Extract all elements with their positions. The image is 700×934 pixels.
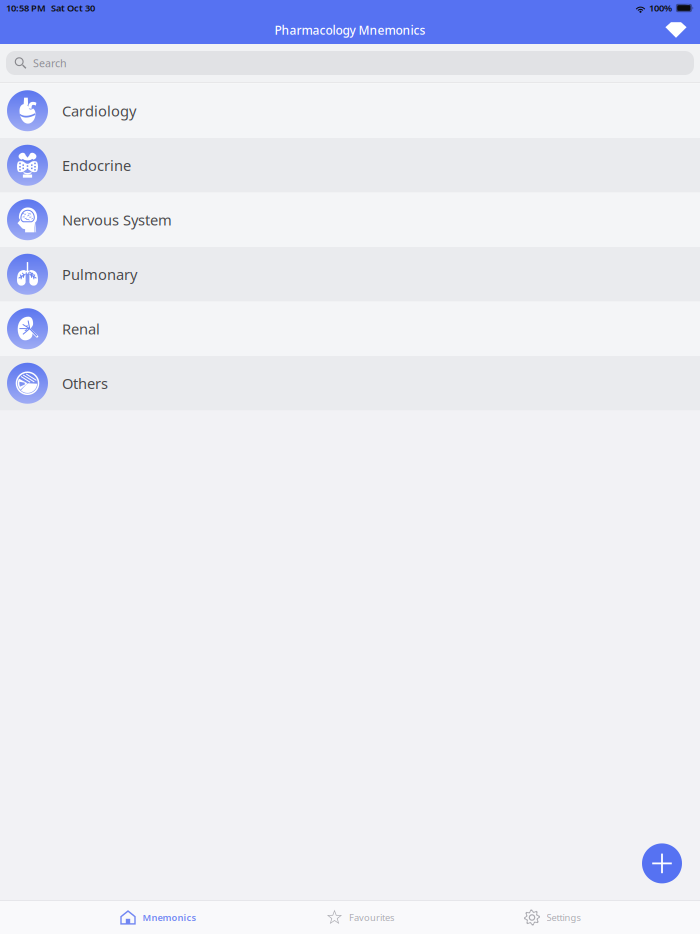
button[interactable]: Mnemonics [109, 903, 206, 932]
staticText: Settings [546, 911, 580, 924]
staticText: Endocrine [62, 155, 131, 175]
button[interactable]: Endocrine [0, 138, 700, 192]
button[interactable]: Nervous System [0, 192, 700, 247]
staticText: Favourites [349, 911, 394, 924]
button[interactable]: Cardiology [0, 83, 700, 138]
staticText: Renal [62, 319, 100, 338]
button[interactable]: Others [0, 356, 700, 410]
staticText: Others [62, 373, 108, 393]
button[interactable]: Settings [513, 903, 590, 932]
staticText: 100% [649, 2, 672, 14]
button[interactable]: Add mnemonic [642, 843, 682, 883]
staticText: Sat Oct 30 [51, 2, 95, 14]
staticText: Pulmonary [62, 264, 137, 284]
button[interactable]: Renal [0, 301, 700, 356]
button[interactable]: Favourites [316, 903, 404, 932]
staticText: Nervous System [62, 210, 172, 229]
staticText: 10:58 PM [6, 2, 46, 14]
staticText: Cardiology [62, 101, 136, 120]
button[interactable]: Pulmonary [0, 247, 700, 301]
staticText: Mnemonics [142, 911, 196, 924]
button[interactable]: Search [6, 51, 694, 75]
staticText: Pharmacology Mnemonics [274, 22, 425, 38]
staticText: Search [33, 56, 67, 70]
button[interactable]: Premium [658, 16, 694, 44]
